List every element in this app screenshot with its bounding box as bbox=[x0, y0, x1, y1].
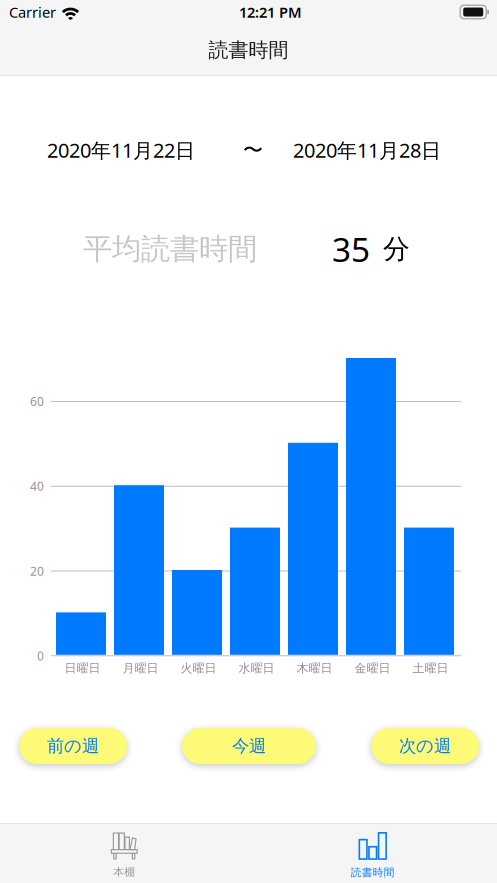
button[interactable]: 本棚 bbox=[0, 823, 248, 882]
staticText: 水曜日 bbox=[238, 661, 274, 675]
staticText: Carrier bbox=[9, 2, 56, 22]
staticText: 前の週 bbox=[47, 735, 99, 757]
staticText: 20 bbox=[30, 563, 44, 579]
staticText: 〜 bbox=[243, 138, 263, 162]
staticText: 日曜日 bbox=[64, 661, 100, 675]
staticText: 60 bbox=[30, 393, 44, 409]
staticText: 12:21 PM bbox=[239, 2, 302, 22]
staticText: 金曜日 bbox=[354, 661, 390, 675]
staticText: 木曜日 bbox=[296, 661, 332, 675]
button[interactable]: 今週 bbox=[182, 728, 316, 764]
button[interactable]: 前の週 bbox=[19, 728, 127, 764]
staticText: 35 bbox=[332, 227, 370, 271]
staticText: 分 bbox=[383, 233, 410, 265]
staticText: 火曜日 bbox=[180, 661, 216, 675]
staticText: 今週 bbox=[232, 735, 266, 757]
staticText: 読書時間 bbox=[351, 866, 395, 879]
button[interactable]: 読書時間 bbox=[248, 823, 497, 883]
staticText: 40 bbox=[30, 478, 44, 494]
staticText: 本棚 bbox=[113, 865, 135, 878]
staticText: 月曜日 bbox=[122, 661, 158, 675]
staticText: 読書時間 bbox=[208, 38, 288, 62]
staticText: 2020年11月22日 bbox=[47, 137, 195, 163]
staticText: 0 bbox=[37, 648, 44, 664]
staticText: 次の週 bbox=[399, 735, 451, 757]
staticText: 2020年11月28日 bbox=[293, 137, 441, 163]
staticText: 平均読書時間 bbox=[83, 231, 257, 267]
button[interactable]: 次の週 bbox=[371, 728, 479, 764]
staticText: 土曜日 bbox=[412, 661, 448, 675]
